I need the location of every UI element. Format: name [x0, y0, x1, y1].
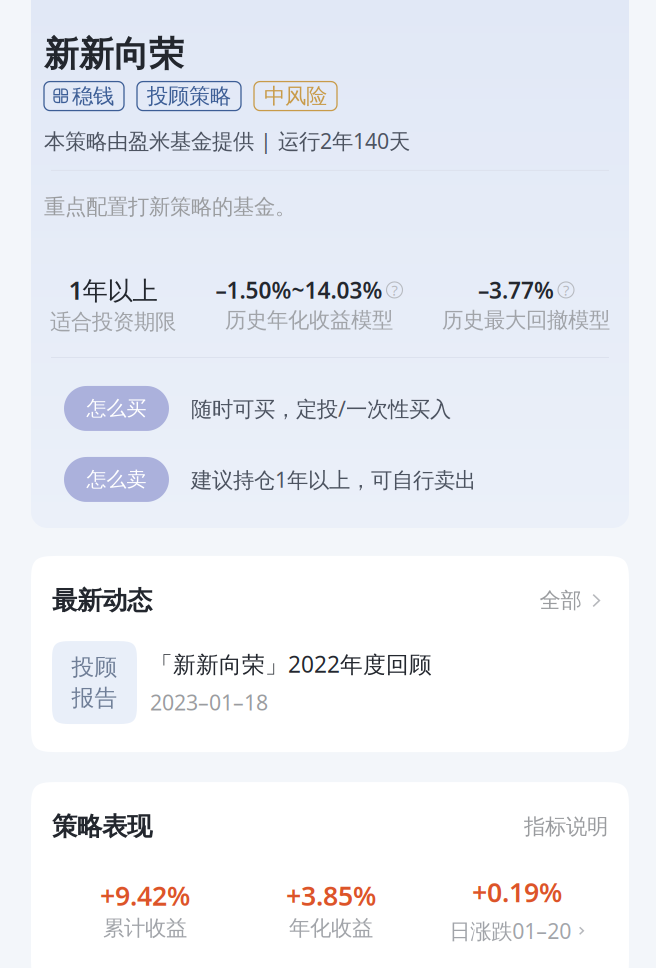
staticText: +3.85% [286, 878, 376, 913]
staticText: 适合投资期限 [50, 309, 176, 335]
button[interactable]: +0.19% [424, 874, 610, 945]
staticText: 投顾 [71, 653, 117, 681]
staticText: 日涨跌01–20 [449, 917, 571, 945]
button[interactable]: 中风险 [254, 82, 337, 111]
button[interactable]: 全部 [540, 587, 608, 614]
staticText: 稳钱 [72, 83, 114, 109]
staticText: 历史年化收益模型 [225, 307, 393, 333]
button[interactable]: 投顾 [52, 641, 608, 724]
staticText: 最新动态 [52, 585, 152, 616]
staticText: 建议持仓1年以上，可自行卖出 [191, 465, 476, 494]
staticText: 历史最大回撤模型 [442, 307, 610, 333]
button[interactable]: 投顾策略 [137, 82, 241, 111]
staticText: 重点配置打新策略的基金。 [44, 194, 296, 220]
staticText: +0.19% [472, 874, 562, 910]
staticText: 年化收益 [289, 915, 373, 941]
staticText: ? [391, 280, 397, 300]
staticText: 累计收益 [103, 915, 187, 941]
staticText: 怎么卖 [86, 467, 146, 492]
button[interactable]: 稳钱 [44, 82, 124, 111]
staticText: 中风险 [264, 83, 327, 109]
staticText: 本策略由盈米基金提供 | 运行2年140天 [44, 127, 410, 155]
staticText: 指标说明 [524, 813, 608, 840]
staticText: +9.42% [100, 878, 190, 913]
button[interactable]: 指标说明 [524, 813, 608, 840]
staticText: 策略表现 [52, 811, 152, 842]
staticText: 怎么买 [86, 396, 146, 421]
staticText: 「新新向荣」2022年度回顾 [150, 649, 432, 679]
staticText: 随时可买，定投/一次性买入 [191, 394, 451, 423]
staticText: 2023–01–18 [150, 688, 268, 716]
staticText: 投顾策略 [147, 83, 231, 109]
staticText: 1年以上 [68, 273, 157, 307]
staticText: 报告 [71, 684, 117, 712]
staticText: 全部 [540, 587, 582, 614]
staticText: –3.77% [478, 275, 554, 305]
staticText: 新新向荣 [44, 33, 184, 76]
staticText: ? [563, 280, 569, 300]
staticText: –1.50%~14.03% [215, 275, 382, 305]
